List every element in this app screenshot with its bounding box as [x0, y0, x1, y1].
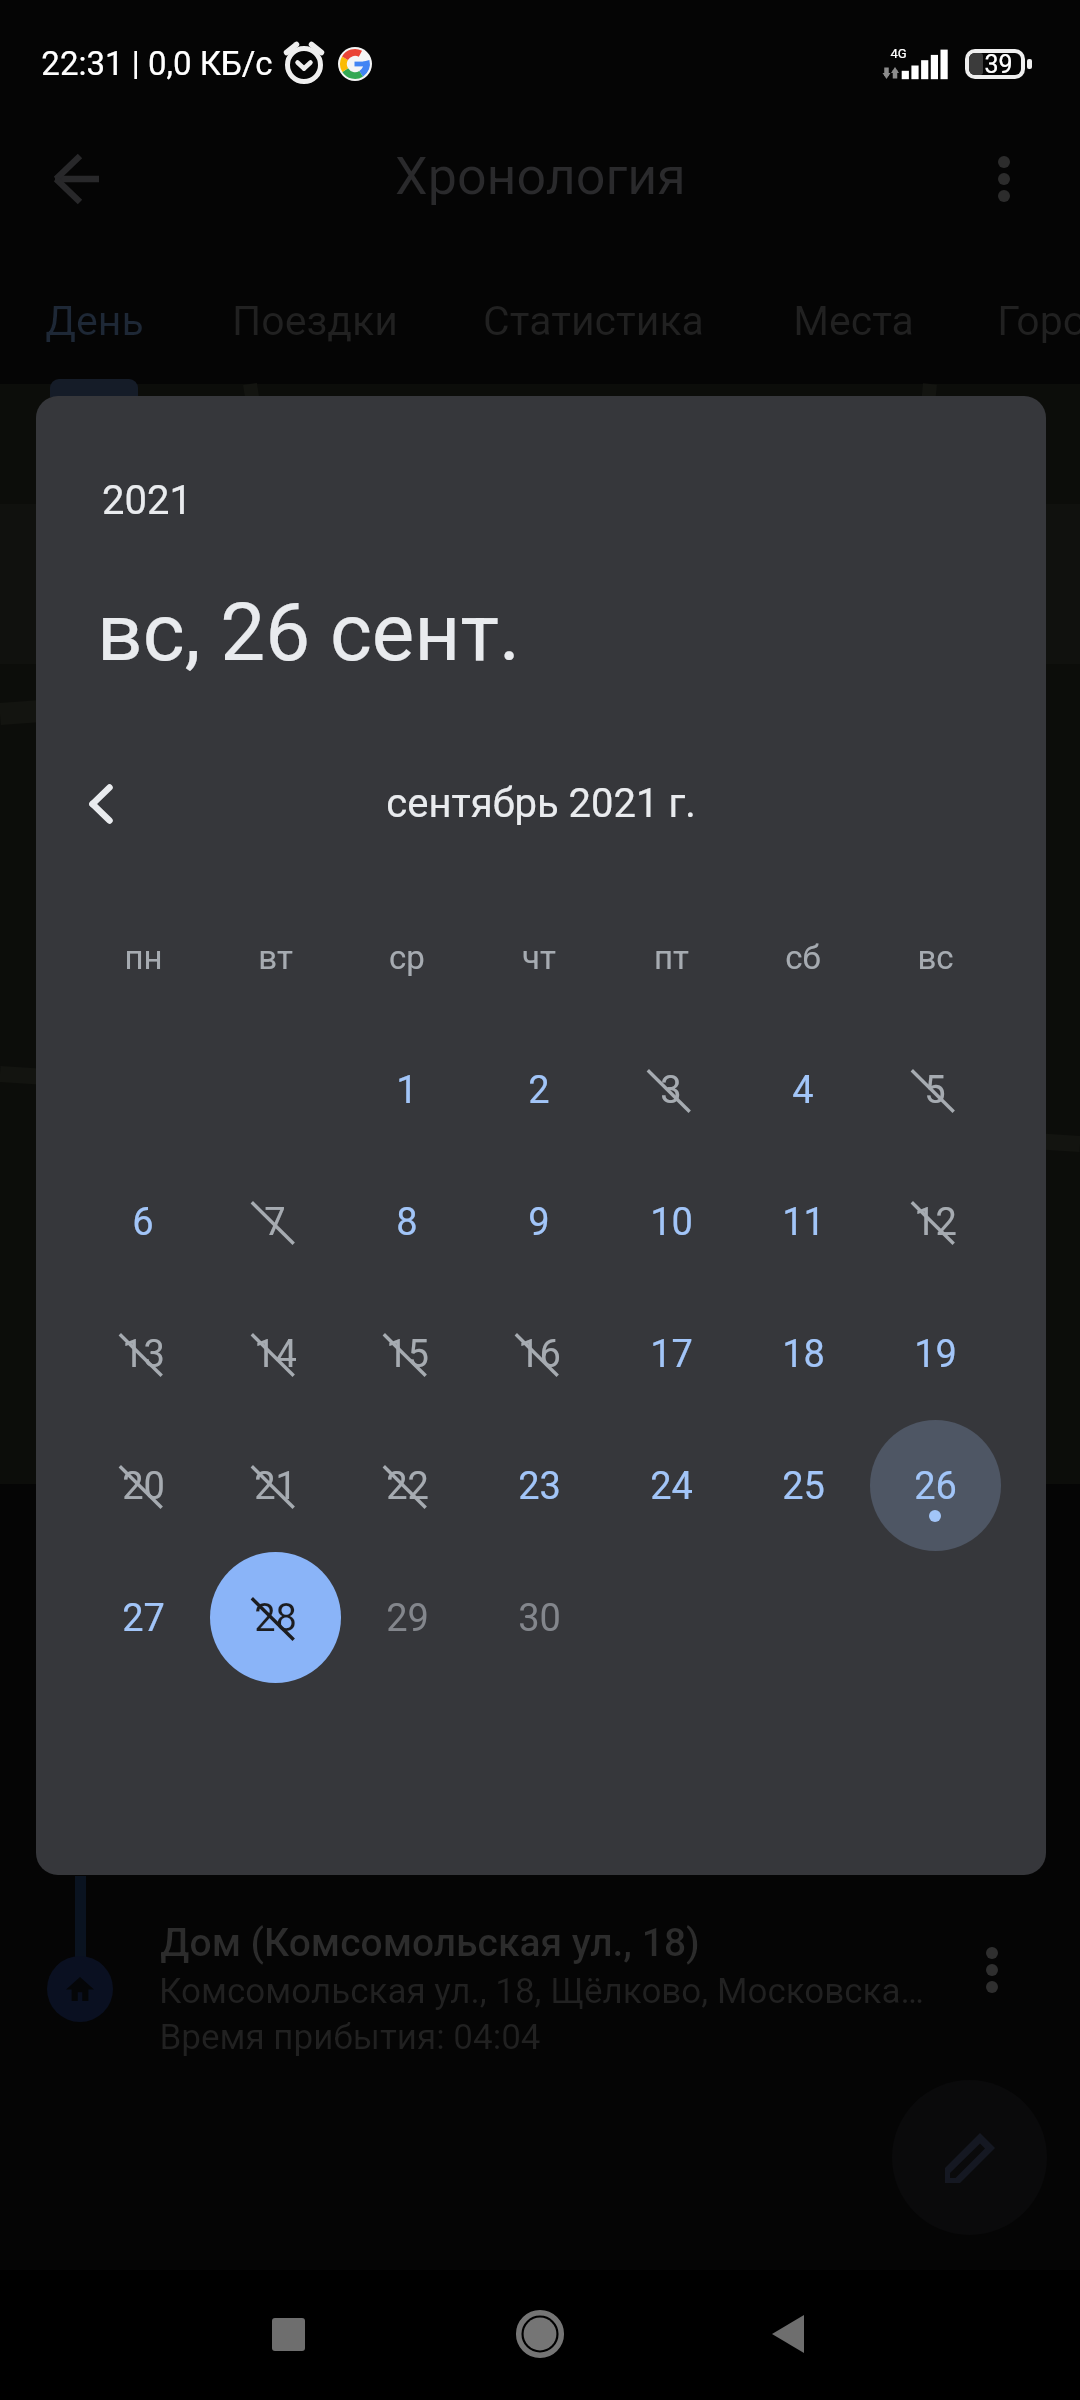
- button[interactable]: 27: [77, 1551, 209, 1683]
- button[interactable]: 30: [473, 1551, 605, 1683]
- staticText: 13: [122, 1332, 165, 1377]
- staticText: 29: [386, 1596, 429, 1641]
- staticText: сб: [785, 938, 821, 977]
- staticText: Статистика: [483, 297, 704, 345]
- button[interactable]: Поездки: [232, 297, 398, 345]
- button[interactable]: 11: [737, 1155, 869, 1287]
- button[interactable]: 10: [605, 1155, 737, 1287]
- button[interactable]: 29: [341, 1551, 473, 1683]
- staticText: 22:31 | 0,0 КБ/с: [41, 44, 273, 83]
- button[interactable]: Previous month: [65, 768, 137, 840]
- staticText: 17: [650, 1332, 693, 1377]
- button[interactable]: More options: [964, 139, 1044, 219]
- staticText: 5: [924, 1068, 946, 1113]
- staticText: 4G: [890, 46, 907, 61]
- staticText: 2021: [102, 477, 192, 524]
- button[interactable]: Recent apps: [240, 2286, 336, 2382]
- button[interactable]: Edit: [892, 2080, 1047, 2235]
- staticText: вс, 26 сент.: [97, 586, 520, 680]
- button[interactable]: Статистика: [483, 297, 704, 345]
- button[interactable]: Города: [997, 297, 1080, 345]
- staticText: Места: [793, 297, 914, 345]
- staticText: Поездки: [232, 297, 398, 345]
- staticText: 3: [660, 1068, 682, 1113]
- button[interactable]: 15: [341, 1287, 473, 1419]
- staticText: 4: [792, 1068, 814, 1113]
- staticText: 6: [132, 1200, 154, 1245]
- staticText: 25: [782, 1464, 825, 1509]
- staticText: 10: [650, 1200, 693, 1245]
- button[interactable]: 6: [77, 1155, 209, 1287]
- button[interactable]: 16: [473, 1287, 605, 1419]
- staticText: Комсомольская ул., 18, Щёлково, Московск…: [159, 1971, 924, 2012]
- button[interactable]: 9: [473, 1155, 605, 1287]
- button[interactable]: 1: [341, 1023, 473, 1155]
- staticText: 24: [650, 1464, 693, 1509]
- staticText: вт: [258, 938, 293, 977]
- staticText: 21: [254, 1464, 297, 1509]
- staticText: 26: [914, 1464, 957, 1509]
- staticText: пн: [124, 938, 163, 977]
- button[interactable]: День: [45, 297, 144, 345]
- staticText: 28: [254, 1596, 297, 1641]
- staticText: 39: [984, 50, 1013, 79]
- button[interactable]: 17: [605, 1287, 737, 1419]
- staticText: 23: [518, 1464, 561, 1509]
- button[interactable]: 19: [869, 1287, 1001, 1419]
- button[interactable]: 20: [77, 1419, 209, 1551]
- staticText: пт: [654, 938, 689, 977]
- staticText: 19: [914, 1332, 957, 1377]
- staticText: 9: [528, 1200, 550, 1245]
- staticText: 15: [386, 1332, 429, 1377]
- staticText: Хронология: [395, 146, 686, 207]
- staticText: 16: [518, 1332, 561, 1377]
- staticText: 14: [254, 1332, 297, 1377]
- staticText: чт: [522, 938, 556, 977]
- staticText: вс: [917, 938, 954, 977]
- staticText: 8: [396, 1200, 418, 1245]
- button[interactable]: 13: [77, 1287, 209, 1419]
- button[interactable]: 3: [605, 1023, 737, 1155]
- staticText: сентябрь 2021 г.: [386, 780, 696, 827]
- button[interactable]: 21: [209, 1419, 341, 1551]
- button[interactable]: 28: [209, 1551, 341, 1683]
- staticText: Время прибытия: 04:04: [159, 2017, 541, 2058]
- staticText: 1: [396, 1068, 418, 1113]
- button[interactable]: 12: [869, 1155, 1001, 1287]
- staticText: 22: [386, 1464, 429, 1509]
- button[interactable]: Места: [793, 297, 914, 345]
- button[interactable]: Back: [740, 2286, 836, 2382]
- button[interactable]: 26: [869, 1419, 1001, 1551]
- button[interactable]: 22: [341, 1419, 473, 1551]
- button[interactable]: 2: [473, 1023, 605, 1155]
- staticText: Дом (Комсомольская ул., 18): [160, 1920, 700, 1966]
- staticText: ср: [389, 938, 425, 977]
- staticText: 20: [122, 1464, 165, 1509]
- staticText: 12: [914, 1200, 957, 1245]
- button[interactable]: 4: [737, 1023, 869, 1155]
- staticText: Города: [997, 297, 1080, 345]
- button[interactable]: 8: [341, 1155, 473, 1287]
- button[interactable]: 5: [869, 1023, 1001, 1155]
- button[interactable]: 24: [605, 1419, 737, 1551]
- staticText: 2: [528, 1068, 550, 1113]
- staticText: 30: [518, 1596, 561, 1641]
- button[interactable]: Home: [492, 2286, 588, 2382]
- button[interactable]: Entry options: [955, 1933, 1029, 2007]
- button[interactable]: 18: [737, 1287, 869, 1419]
- staticText: 27: [122, 1596, 165, 1641]
- staticText: 18: [782, 1332, 825, 1377]
- button[interactable]: Back: [37, 139, 117, 219]
- staticText: 7: [264, 1200, 286, 1245]
- button[interactable]: 23: [473, 1419, 605, 1551]
- button[interactable]: 14: [209, 1287, 341, 1419]
- staticText: 11: [782, 1200, 825, 1245]
- staticText: День: [45, 297, 144, 345]
- button[interactable]: 25: [737, 1419, 869, 1551]
- button[interactable]: 7: [209, 1155, 341, 1287]
